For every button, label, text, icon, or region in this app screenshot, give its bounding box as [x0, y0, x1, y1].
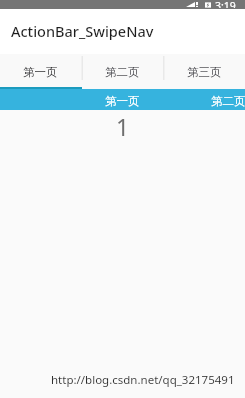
- staticText: ActionBar_SwipeNav: [11, 21, 154, 41]
- staticText: 第二页: [211, 94, 245, 108]
- button[interactable]: ActionBar_SwipeNav: [0, 9, 245, 54]
- other: Battery charging: [205, 2, 211, 8]
- staticText: 第一页: [23, 65, 58, 79]
- staticText: 第二页: [105, 65, 140, 79]
- staticText: http://blog.csdn.net/qq_32175491: [51, 372, 235, 388]
- button[interactable]: 第三页: [163, 54, 245, 89]
- staticText: 1: [116, 111, 130, 142]
- button[interactable]: 第一页: [0, 54, 81, 89]
- staticText: 第三页: [187, 65, 222, 79]
- staticText: 第一页: [105, 94, 140, 108]
- other: Alert: [196, 2, 198, 7]
- button[interactable]: 第二页: [211, 93, 245, 107]
- button[interactable]: 第二页: [81, 54, 163, 89]
- other: Mobile signal: [186, 2, 195, 7]
- staticText: 3:19: [215, 0, 236, 8]
- button[interactable]: 第一页: [105, 93, 140, 107]
